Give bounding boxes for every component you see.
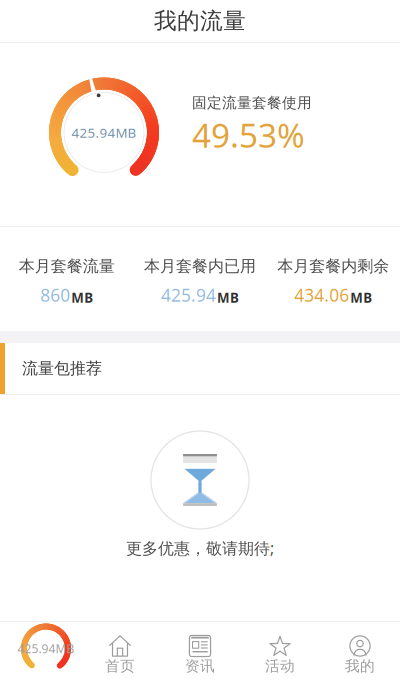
staticText: MB — [71, 289, 93, 307]
button[interactable]: 我的流量 — [0, 622, 80, 681]
staticText: 434.06 — [294, 283, 349, 307]
staticText: 860 — [40, 283, 70, 307]
staticText: 425.94 — [161, 283, 216, 307]
staticText: 更多优惠，敬请期待; — [126, 537, 274, 559]
staticText: MB — [217, 289, 239, 307]
button[interactable]: 资讯 — [160, 622, 240, 681]
staticText: 本月套餐内已用 — [144, 256, 256, 276]
button[interactable]: 我的 — [320, 622, 400, 681]
staticText: 425.94MB — [71, 123, 136, 142]
staticText: 流量包推荐 — [22, 358, 102, 379]
staticText: 固定流量套餐使用 — [192, 94, 312, 112]
staticText: 本月套餐流量 — [19, 256, 115, 276]
staticText: 我的 — [345, 657, 375, 675]
staticText: 活动 — [265, 657, 295, 675]
staticText: 本月套餐内剩余 — [277, 256, 389, 276]
staticText: 425.94MB — [17, 640, 74, 657]
staticText: 49.53% — [192, 112, 305, 157]
staticText: 首页 — [105, 657, 135, 675]
staticText: 资讯 — [185, 657, 215, 675]
button[interactable]: 活动 — [240, 622, 320, 681]
staticText: MB — [350, 289, 372, 307]
staticText: 我的流量 — [154, 7, 246, 35]
button[interactable]: 首页 — [80, 622, 160, 681]
